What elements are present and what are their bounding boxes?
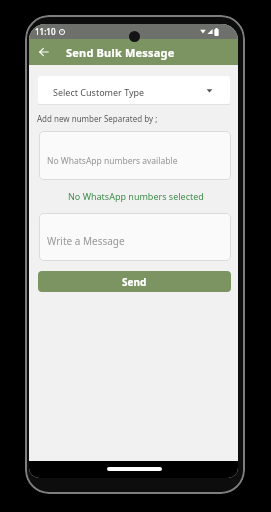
staticText: Send	[122, 275, 147, 289]
staticText: Add new number Separated by ;	[37, 113, 158, 124]
button[interactable]	[29, 39, 59, 65]
staticText: Select Customer Type	[53, 86, 145, 98]
button[interactable]: Write a Message	[39, 213, 231, 261]
button[interactable]: Send	[38, 271, 231, 292]
staticText: No WhatsApp numbers selected	[68, 190, 204, 202]
button[interactable]: Select Customer Type	[38, 76, 230, 104]
button[interactable]: No WhatsApp numbers available	[39, 131, 231, 180]
staticText: Send Bulk Message	[66, 45, 175, 60]
staticText: No WhatsApp numbers available	[47, 155, 178, 167]
staticText: Write a Message	[47, 234, 125, 248]
staticText: 11:10	[35, 26, 56, 37]
